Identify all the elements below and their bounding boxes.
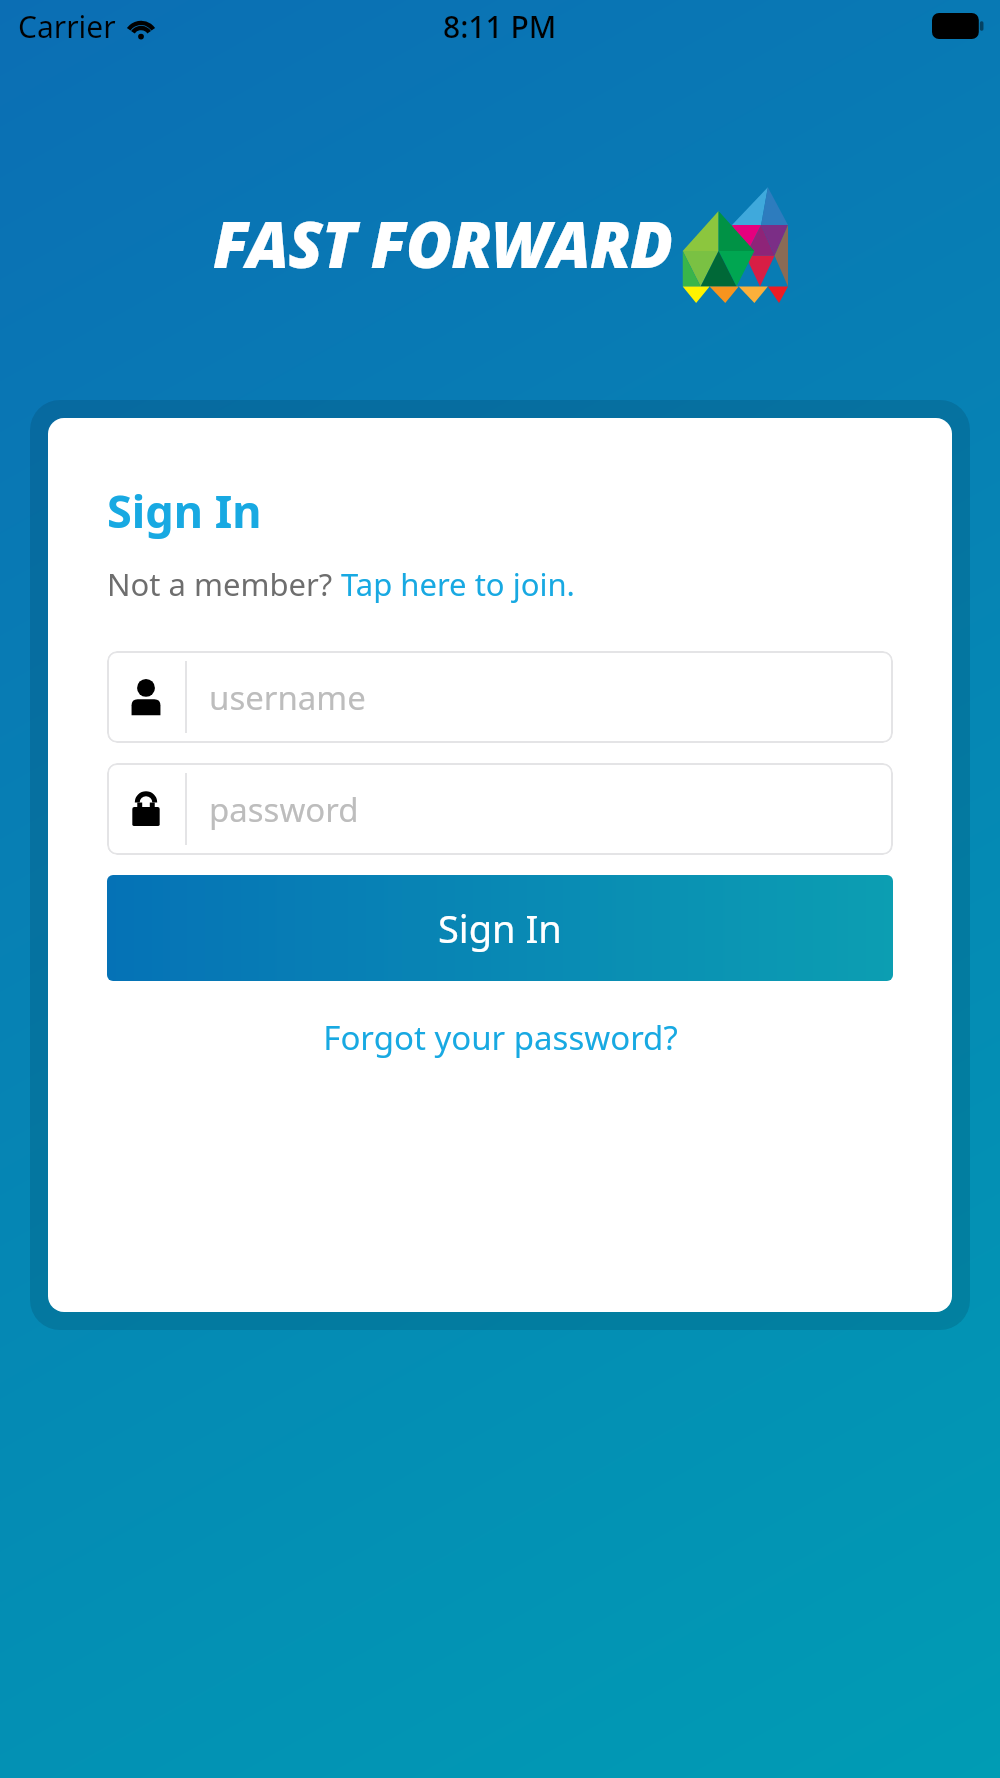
- staticText: username: [209, 675, 366, 720]
- staticText: Tap here to join.: [341, 563, 575, 605]
- staticText: Carrier: [18, 6, 116, 47]
- staticText: Forgot your password?: [323, 1015, 678, 1060]
- button[interactable]: Tap here to join.: [341, 563, 575, 605]
- staticText: Sign In: [107, 480, 262, 541]
- button[interactable]: Forgot your password?: [107, 1009, 893, 1066]
- staticText: password: [209, 787, 359, 832]
- button[interactable]: username: [107, 651, 893, 743]
- staticText: 8:11 PM: [443, 6, 557, 47]
- button[interactable]: password: [107, 763, 893, 855]
- staticText: Sign In: [438, 902, 562, 954]
- button[interactable]: Sign In: [107, 875, 893, 981]
- staticText: FAST FORWARD: [213, 201, 672, 287]
- staticText: Not a member?: [107, 563, 341, 605]
